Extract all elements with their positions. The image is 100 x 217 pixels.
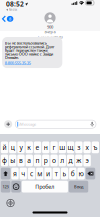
staticText: у: [19, 143, 22, 152]
staticText: вчера: [44, 29, 55, 34]
button[interactable]: ч: [19, 168, 27, 179]
staticText: э: [86, 156, 89, 165]
staticText: ь: [62, 169, 66, 178]
staticText: к: [27, 143, 31, 152]
button[interactable]: Emoji keyboard: [11, 181, 21, 193]
button[interactable]: б: [69, 168, 76, 179]
staticText: н: [44, 143, 48, 152]
button[interactable]: к: [26, 141, 33, 153]
button[interactable]: х: [83, 141, 91, 153]
button[interactable]: о: [50, 154, 58, 166]
button[interactable]: ф: [1, 154, 8, 166]
button[interactable]: Delete: [86, 168, 95, 179]
staticText: Сегодня 08:49: [37, 34, 62, 40]
button[interactable]: Shift: [1, 168, 10, 179]
button[interactable]: ц: [9, 141, 16, 153]
button[interactable]: л: [59, 154, 66, 166]
staticText: я: [13, 169, 17, 178]
staticText: а: [27, 156, 31, 165]
button[interactable]: ж: [75, 154, 82, 166]
staticText: й: [2, 143, 6, 152]
staticText: 8-800-555-35-35: [5, 60, 31, 65]
staticText: и: [46, 169, 50, 178]
staticText: ы: [10, 156, 15, 165]
button[interactable]: н: [42, 141, 49, 153]
staticText: щ: [68, 143, 74, 152]
button[interactable]: ы: [9, 154, 16, 166]
button[interactable]: э: [83, 154, 91, 166]
button[interactable]: т: [53, 168, 60, 179]
button[interactable]: у: [17, 141, 25, 153]
staticText: з: [77, 143, 80, 152]
button[interactable]: е: [34, 141, 41, 153]
staticText: ъ: [93, 143, 97, 152]
button[interactable]: р: [42, 154, 49, 166]
staticText: т: [55, 169, 58, 178]
button[interactable]: Switch keyboard: [7, 199, 14, 207]
button[interactable]: ю: [77, 168, 85, 179]
staticText: м: [37, 169, 42, 178]
staticText: ш: [59, 143, 65, 152]
staticText: о: [52, 156, 56, 165]
button[interactable]: д: [67, 154, 74, 166]
button[interactable]: а: [26, 154, 33, 166]
staticText: 08:52: [6, 0, 24, 8]
button[interactable]: в: [17, 154, 25, 166]
staticText: п: [35, 156, 39, 165]
button[interactable]: и: [44, 168, 52, 179]
staticText: б: [71, 169, 75, 178]
staticText: х: [86, 143, 89, 152]
staticText: л: [60, 156, 64, 165]
staticText: Вы не воспользовались реферальной ссылко…: [5, 40, 55, 60]
staticText: е: [35, 143, 39, 152]
button[interactable]: й: [1, 141, 8, 153]
staticText: р: [44, 156, 48, 165]
button[interactable]: с: [28, 168, 35, 179]
button[interactable]: г: [50, 141, 58, 153]
button[interactable]: ш: [59, 141, 66, 153]
staticText: ж: [76, 156, 81, 165]
staticText: iMessage: [19, 121, 36, 127]
button[interactable]: я: [11, 168, 19, 179]
staticText: Пробел: [35, 183, 54, 190]
button[interactable]: ь: [61, 168, 68, 179]
button[interactable]: Add attachment: [4, 120, 12, 128]
button[interactable]: Back to conversations: [0, 14, 15, 24]
staticText: ц: [11, 143, 15, 152]
staticText: в: [19, 156, 23, 165]
button[interactable]: щ: [67, 141, 74, 153]
button[interactable]: п: [34, 154, 41, 166]
button[interactable]: Message field: [15, 120, 96, 128]
button[interactable]: м: [36, 168, 43, 179]
button[interactable]: Пробел: [22, 181, 68, 193]
button[interactable]: з: [75, 141, 82, 153]
button[interactable]: Ввод: [69, 181, 88, 193]
button[interactable]: 123: [1, 181, 10, 193]
button[interactable]: 900, contact details: [44, 12, 56, 30]
staticText: ч: [21, 169, 25, 178]
staticText: Ввод: [74, 184, 83, 189]
button[interactable]: ъ: [92, 141, 99, 153]
staticText: ю: [78, 169, 83, 178]
staticText: д: [69, 156, 73, 165]
staticText: 123: [3, 184, 9, 189]
staticText: Yandex: [9, 8, 17, 11]
staticText: 900: [47, 24, 53, 30]
staticText: ф: [2, 156, 7, 165]
staticText: с: [30, 169, 33, 178]
staticText: 8: [9, 16, 11, 21]
staticText: г: [52, 143, 55, 152]
